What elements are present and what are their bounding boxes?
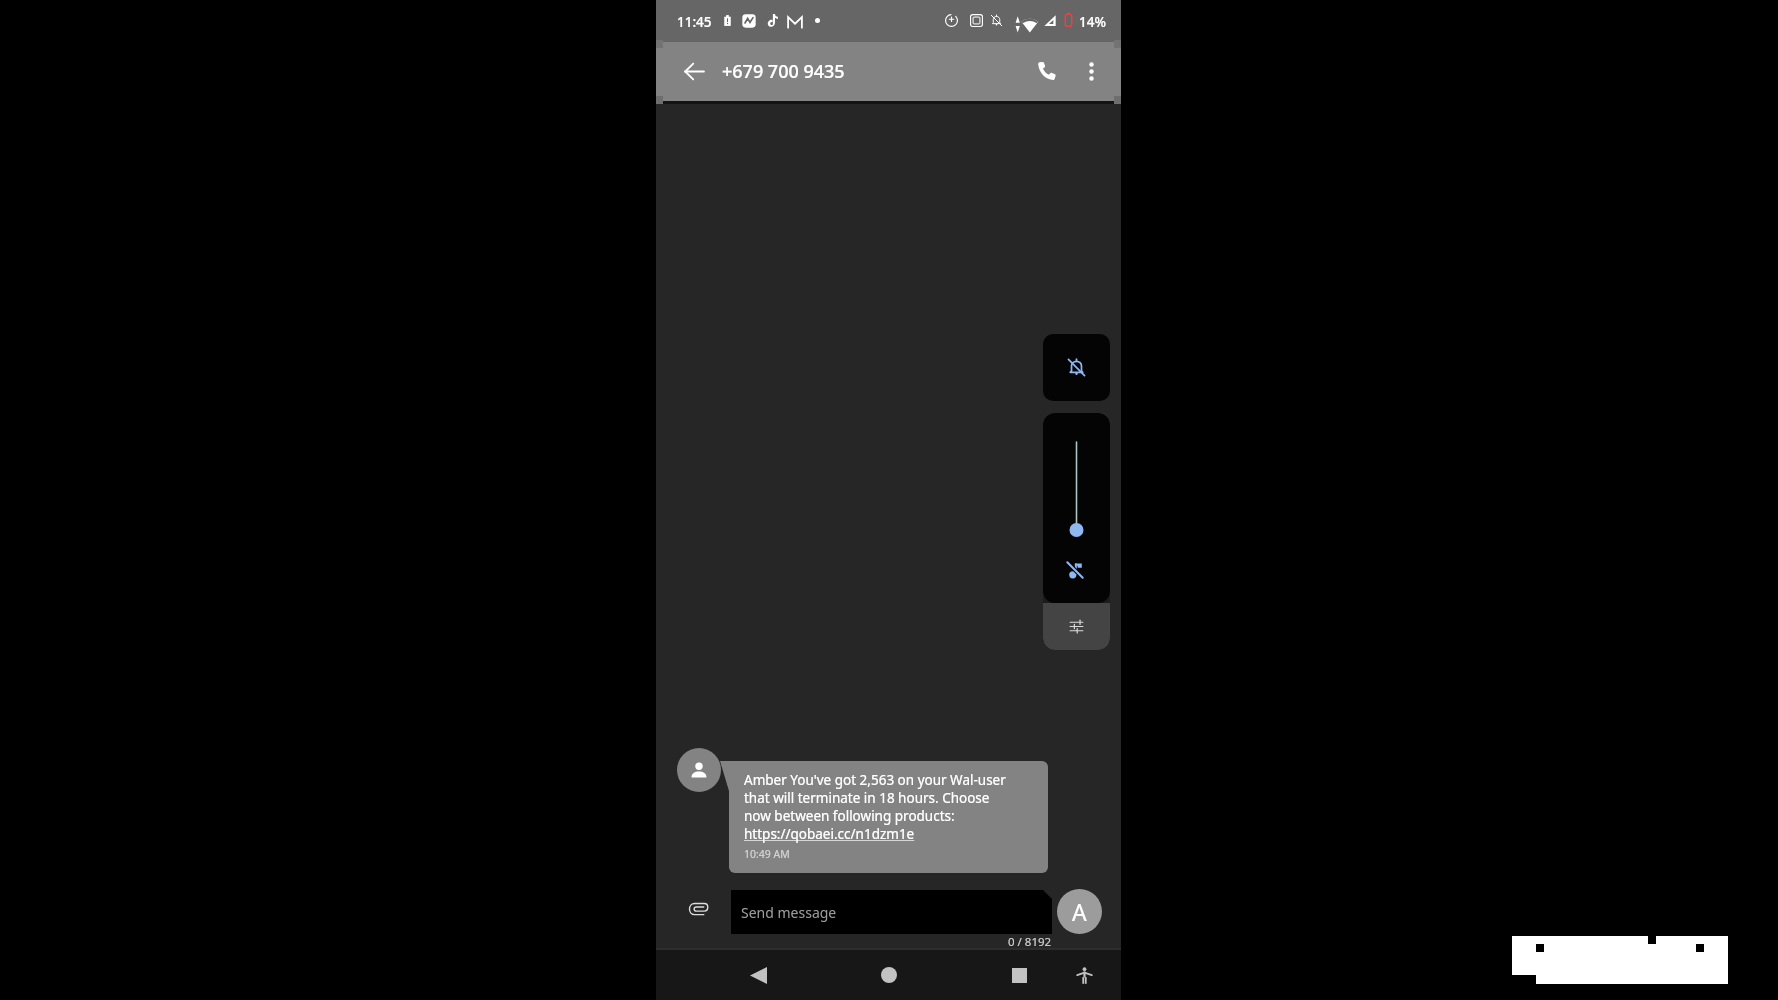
staticText: https://qobaei.cc/n1dzm1e <box>744 825 915 843</box>
staticText: 14% <box>1079 13 1106 31</box>
button[interactable]: Amber You've got 2,563 on your Wal-user <box>729 761 1048 873</box>
staticText: 11:45 <box>677 13 712 31</box>
staticText: 0 / 8192 <box>1008 934 1052 950</box>
staticText: A <box>1072 896 1087 927</box>
staticText: Send message <box>741 903 837 922</box>
button[interactable]: Back <box>736 953 780 997</box>
staticText: 10:49 AM <box>744 847 790 861</box>
staticText: Amber You've got 2,563 on your Wal-user <box>744 771 1006 789</box>
button[interactable]: A <box>1057 889 1102 934</box>
button[interactable]: Media volume <box>1043 413 1110 603</box>
button[interactable]: Accessibility <box>1062 953 1106 997</box>
button[interactable]: Volume settings <box>1043 603 1110 650</box>
button[interactable]: More options <box>1067 47 1115 95</box>
button[interactable]: Back <box>670 47 718 95</box>
staticText: now between following products: <box>744 807 955 825</box>
button[interactable]: Ringer mode <box>1043 334 1110 401</box>
button[interactable]: Attach <box>680 890 716 926</box>
button[interactable]: Call <box>1023 47 1071 95</box>
button[interactable]: Recent apps <box>997 953 1041 997</box>
button[interactable]: Home <box>867 953 911 997</box>
button[interactable]: Send message <box>731 890 1052 934</box>
staticText: +679 700 9435 <box>722 59 845 84</box>
staticText: that will terminate in 18 hours. Choose <box>744 789 990 807</box>
